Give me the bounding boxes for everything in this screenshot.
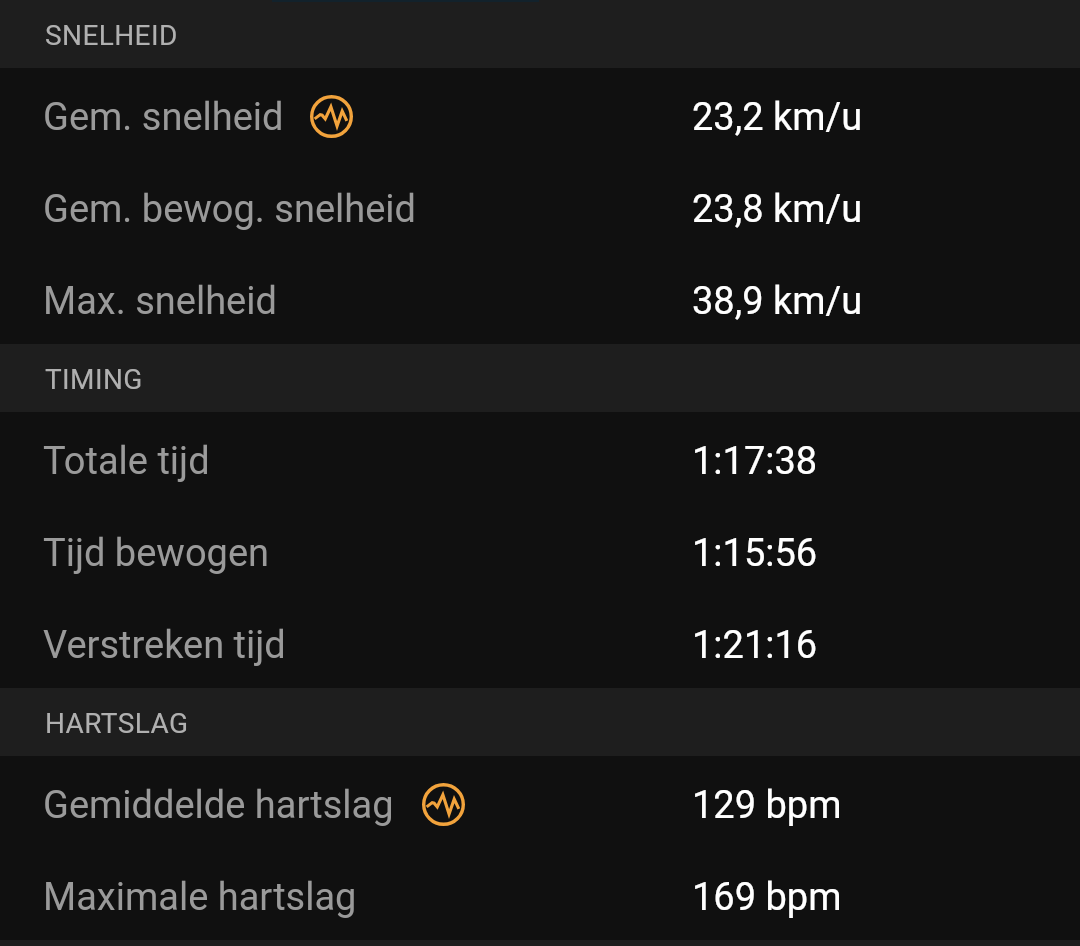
button[interactable]: Gemiddelde hartslag xyxy=(0,756,1080,848)
staticText: 1:15:56 xyxy=(692,531,818,576)
staticText: Maximale hartslag xyxy=(43,875,357,920)
staticText: Gem. bewog. snelheid xyxy=(43,187,417,232)
staticText: Totale tijd xyxy=(43,439,210,484)
button[interactable]: Max. snelheid xyxy=(0,252,1080,344)
staticText: HARTSLAG xyxy=(45,707,189,740)
staticText: 23,2 km/u xyxy=(692,95,863,140)
button[interactable]: Tijd bewogen xyxy=(0,504,1080,596)
button[interactable]: Gem. bewog. snelheid xyxy=(0,160,1080,252)
staticText: SNELHEID xyxy=(45,19,178,52)
staticText: 169 bpm xyxy=(692,875,842,920)
staticText: TIMING xyxy=(45,363,143,396)
staticText: Max. snelheid xyxy=(43,279,277,324)
staticText: 129 bpm xyxy=(692,783,842,828)
staticText: 23,8 km/u xyxy=(692,187,863,232)
staticText: Gem. snelheid xyxy=(43,95,284,140)
button[interactable]: Totale tijd xyxy=(0,412,1080,504)
staticText: 38,9 km/u xyxy=(692,279,863,324)
button[interactable]: Verstreken tijd xyxy=(0,596,1080,688)
staticText: 1:21:16 xyxy=(692,623,818,668)
other: Heart rate measured xyxy=(310,95,353,138)
button[interactable]: Maximale hartslag xyxy=(0,848,1080,940)
staticText: 1:17:38 xyxy=(692,439,818,484)
staticText: Gemiddelde hartslag xyxy=(43,783,394,828)
staticText: Tijd bewogen xyxy=(43,531,270,576)
button[interactable]: Gem. snelheid xyxy=(0,68,1080,160)
other: Heart rate measured xyxy=(422,783,465,826)
staticText: Verstreken tijd xyxy=(43,623,286,668)
